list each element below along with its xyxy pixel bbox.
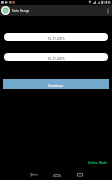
staticText: Online Mode <box>88 161 108 165</box>
button[interactable]: 15-11-2015 <box>4 33 108 41</box>
button[interactable]: Continue <box>3 79 109 89</box>
button[interactable]: Recents <box>68 166 91 180</box>
staticText: 15-11-2015 <box>47 56 65 60</box>
button[interactable]: More options <box>103 5 112 16</box>
staticText: 15-11-2015 <box>47 36 65 40</box>
button[interactable]: 15-11-2015 <box>4 53 108 61</box>
staticText: Date Range <box>12 9 30 13</box>
button[interactable]: Home <box>45 166 68 180</box>
button[interactable]: Back <box>22 166 45 180</box>
staticText: Continue <box>48 83 64 88</box>
